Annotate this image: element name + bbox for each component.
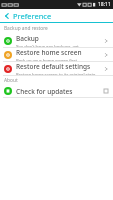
staticText: Restore default settings — [16, 62, 91, 71]
staticText: Restore home screen to its original stat… — [16, 72, 96, 75]
staticText: About — [4, 77, 18, 84]
staticText: Backup — [16, 34, 39, 43]
button[interactable]: Back — [0, 9, 13, 22]
staticText: You don't have any backups, yet — [16, 44, 79, 47]
button[interactable]: Restore home screen — [0, 48, 113, 61]
staticText: Back up your home screen first. — [16, 58, 79, 61]
staticText: Restore home screen — [16, 48, 82, 57]
staticText: Check for updates — [16, 87, 73, 96]
button[interactable]: Restore default settings — [0, 62, 113, 75]
staticText: Preference — [13, 11, 52, 21]
button[interactable]: Backup — [0, 34, 113, 47]
button[interactable]: Check for updates — [0, 85, 113, 97]
staticText: 18:11 — [98, 1, 111, 8]
staticText: Backup and restore — [4, 25, 48, 32]
